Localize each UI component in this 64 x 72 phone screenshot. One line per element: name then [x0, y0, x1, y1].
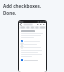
button[interactable]: Unchecked task — [21, 46, 44, 48]
button[interactable]: Checked task — [21, 40, 44, 42]
staticText: Add checkboxes. — [3, 3, 42, 9]
staticText: Done. — [3, 10, 17, 16]
button[interactable]: Checked item — [21, 59, 23, 61]
button[interactable]: Formatting toolbar — [19, 26, 46, 29]
button[interactable]: Unchecked task — [21, 43, 44, 45]
button[interactable]: Document toolbar — [19, 23, 46, 26]
button[interactable]: Phone preview of a document with checkbo… — [18, 20, 47, 72]
